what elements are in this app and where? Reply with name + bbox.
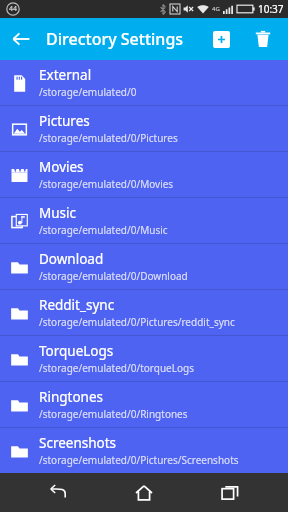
button[interactable]: Recent apps [202,473,258,512]
staticText: /storage/emulated/0/Movies [39,177,174,191]
button[interactable]: Reddit_sync [0,290,288,336]
button[interactable]: TorqueLogs [0,336,288,382]
button[interactable]: Add directory [200,18,242,60]
staticText: 44 [9,4,18,14]
staticText: External [39,66,92,84]
staticText: /storage/emulated/0/Pictures/Screenshots [39,453,239,467]
staticText: /storage/emulated/0/Music [39,223,168,237]
button[interactable]: Back [30,473,86,512]
staticText: Ringtones [39,388,103,406]
staticText: Download [39,250,104,268]
staticText: /storage/emulated/0/torqueLogs [39,361,194,375]
staticText: Reddit_sync [39,296,115,314]
staticText: /storage/emulated/0/Download [39,269,188,283]
staticText: TorqueLogs [39,342,114,360]
button[interactable]: Delete [242,18,284,60]
staticText: /storage/emulated/0/Ringtones [39,407,188,421]
button[interactable]: Download [0,244,288,290]
button[interactable]: Movies [0,152,288,198]
staticText: Movies [39,158,84,176]
staticText: /storage/emulated/0/Pictures [39,131,178,145]
button[interactable]: External [0,60,288,106]
button[interactable]: Back [0,18,42,60]
staticText: Screenshots [39,434,117,452]
staticText: Directory Settings [46,28,184,50]
staticText: 10:37 [258,2,284,16]
button[interactable]: Screenshots [0,428,288,473]
staticText: 4G [212,5,220,13]
button[interactable]: Ringtones [0,382,288,428]
button[interactable]: Home [116,473,172,512]
staticText: Music [39,204,77,222]
button[interactable]: Music [0,198,288,244]
staticText: /storage/emulated/0 [39,85,137,99]
button[interactable]: Pictures [0,106,288,152]
staticText: Pictures [39,112,90,130]
staticText: /storage/emulated/0/Pictures/reddit_sync [39,315,235,329]
